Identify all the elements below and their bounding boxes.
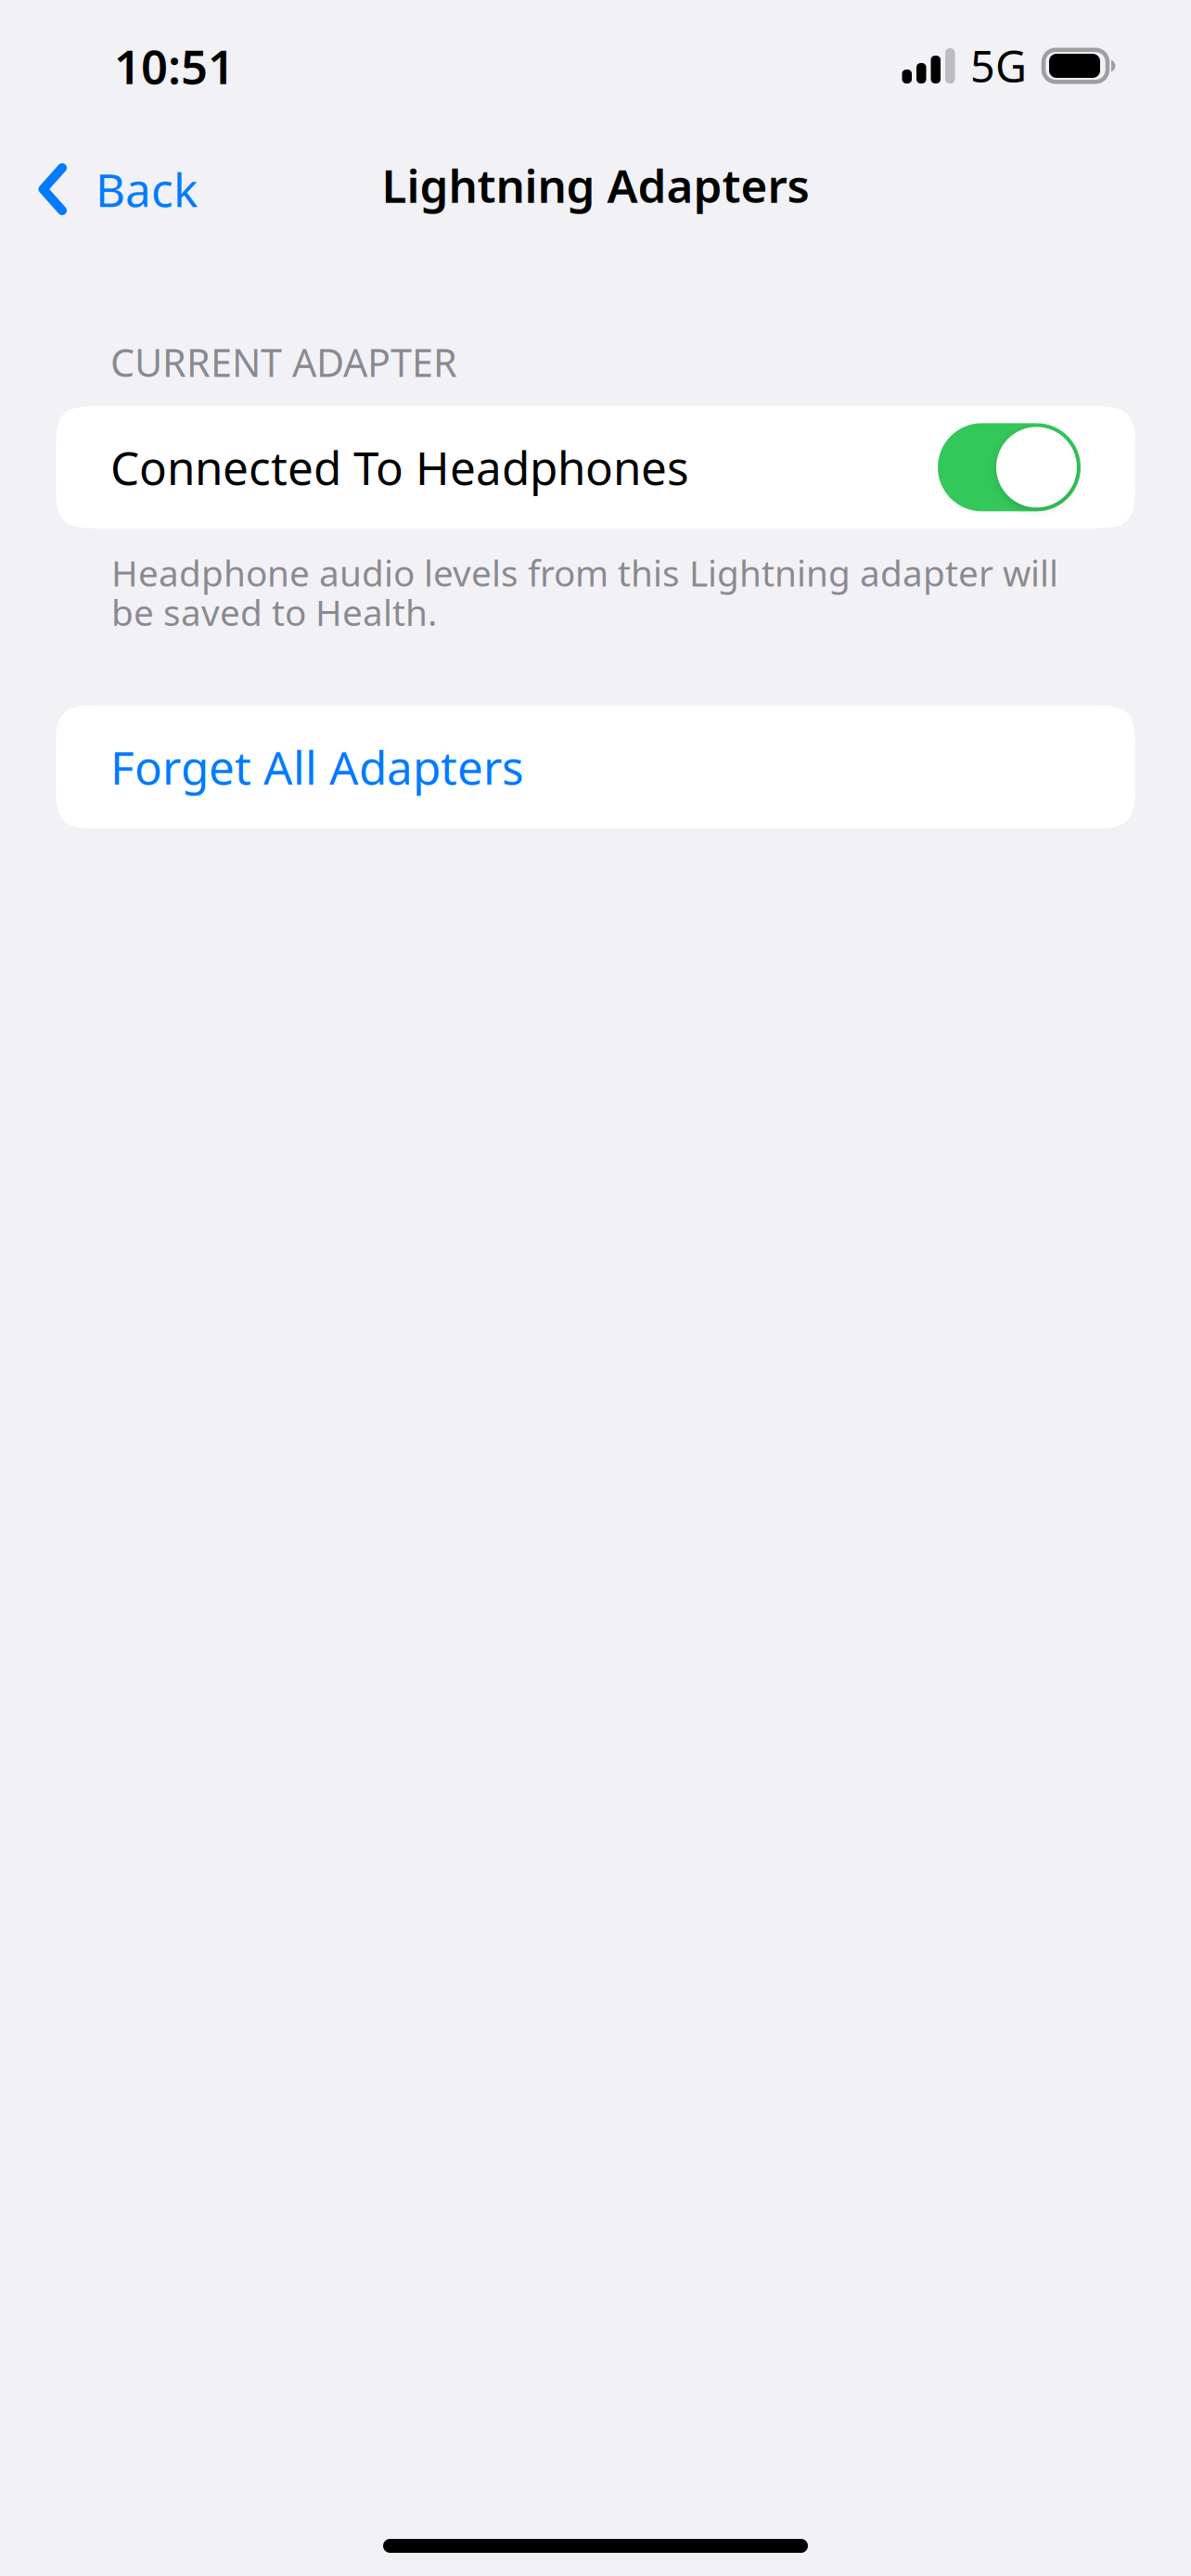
staticText: Back (96, 159, 198, 219)
staticText: Lightning Adapters (382, 155, 809, 215)
staticText: CURRENT ADAPTER (110, 337, 457, 388)
staticText: 10:51 (114, 35, 235, 97)
staticText: Connected To Headphones (110, 437, 689, 498)
staticText: Headphone audio levels from this Lightni… (111, 549, 1058, 636)
button[interactable]: Back (0, 143, 220, 236)
staticText: 5G (970, 37, 1027, 95)
button[interactable]: Forget All Adapters (56, 705, 1135, 829)
button[interactable]: Connected To Headphones (938, 423, 1081, 511)
staticText: Forget All Adapters (110, 737, 524, 797)
